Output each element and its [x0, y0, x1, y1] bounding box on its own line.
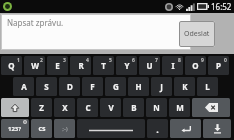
staticText: U — [146, 60, 153, 71]
button[interactable]: U — [139, 56, 160, 75]
button[interactable]: W — [24, 56, 45, 75]
staticText: 6 — [132, 57, 135, 64]
button[interactable]: S — [36, 77, 57, 96]
button[interactable]: Hide keyboard — [203, 119, 231, 138]
staticText: Q — [8, 60, 15, 71]
staticText: J — [160, 81, 163, 92]
staticText: 16:52 — [211, 1, 232, 12]
button[interactable]: Enter — [170, 119, 201, 138]
button[interactable]: E — [47, 56, 68, 75]
staticText: F — [90, 81, 95, 92]
button[interactable]: Odeslat — [179, 21, 215, 47]
button[interactable]: F — [82, 77, 103, 96]
button[interactable]: Z — [31, 98, 52, 117]
button[interactable]: Q — [1, 56, 22, 75]
staticText: E — [55, 60, 60, 71]
staticText: S — [44, 81, 49, 92]
button[interactable]: Y — [116, 56, 137, 75]
button[interactable]: A — [13, 77, 34, 96]
button[interactable]: Space — [77, 119, 145, 138]
button[interactable]: H — [128, 77, 149, 96]
staticText: 3 — [63, 57, 66, 64]
staticText: K — [182, 81, 188, 92]
staticText: I — [171, 60, 175, 71]
button[interactable]: I — [162, 56, 183, 75]
button[interactable]: V — [100, 98, 121, 117]
staticText: . — [156, 123, 159, 135]
button[interactable]: ;-) — [54, 119, 75, 138]
staticText: X — [62, 102, 68, 113]
staticText: A — [21, 81, 27, 92]
staticText: 7 — [155, 57, 158, 64]
staticText: 5 — [109, 57, 112, 64]
staticText: H — [135, 81, 142, 92]
staticText: N — [153, 102, 160, 113]
staticText: Y — [124, 60, 130, 71]
button[interactable]: J — [151, 77, 172, 96]
staticText: O — [192, 60, 199, 71]
button[interactable]: R — [70, 56, 91, 75]
staticText: Z — [39, 102, 44, 113]
staticText: Napsat zprávu. — [7, 17, 64, 28]
staticText: 123? — [8, 125, 22, 133]
button[interactable]: L — [197, 77, 218, 96]
staticText: R — [78, 60, 84, 71]
staticText: G — [113, 81, 119, 92]
button[interactable]: M — [169, 98, 190, 117]
staticText: M — [176, 102, 184, 113]
staticText: D — [67, 81, 73, 92]
staticText: 9 — [201, 57, 204, 64]
staticText: C — [85, 102, 91, 113]
button[interactable]: Backspace — [192, 98, 230, 117]
button[interactable]: K — [174, 77, 195, 96]
staticText: 2 — [40, 57, 43, 64]
button[interactable]: D — [59, 77, 80, 96]
button[interactable]: P — [208, 56, 229, 75]
staticText: B — [131, 102, 137, 113]
staticText: 4 — [86, 57, 89, 64]
button[interactable]: Shift — [1, 98, 29, 117]
staticText: W — [31, 60, 39, 71]
button[interactable]: C — [77, 98, 98, 117]
staticText: cs — [38, 124, 46, 134]
staticText: P — [216, 60, 221, 71]
button[interactable]: Napsat zprávu. — [1, 14, 191, 50]
button[interactable]: B — [123, 98, 144, 117]
staticText: L — [205, 81, 210, 92]
staticText: 1 — [17, 57, 20, 64]
staticText: 8 — [178, 57, 181, 64]
staticText: 0 — [224, 57, 227, 64]
button[interactable]: cs — [31, 119, 52, 138]
button[interactable]: N — [146, 98, 167, 117]
button[interactable]: 123? — [1, 119, 29, 138]
button[interactable]: O — [185, 56, 206, 75]
staticText: Odeslat — [184, 29, 210, 39]
staticText: ;-) — [62, 125, 68, 133]
button[interactable]: T — [93, 56, 114, 75]
button[interactable]: X — [54, 98, 75, 117]
staticText: V — [108, 102, 114, 113]
button[interactable]: . — [147, 119, 168, 138]
staticText: T — [101, 60, 106, 71]
button[interactable]: G — [105, 77, 126, 96]
